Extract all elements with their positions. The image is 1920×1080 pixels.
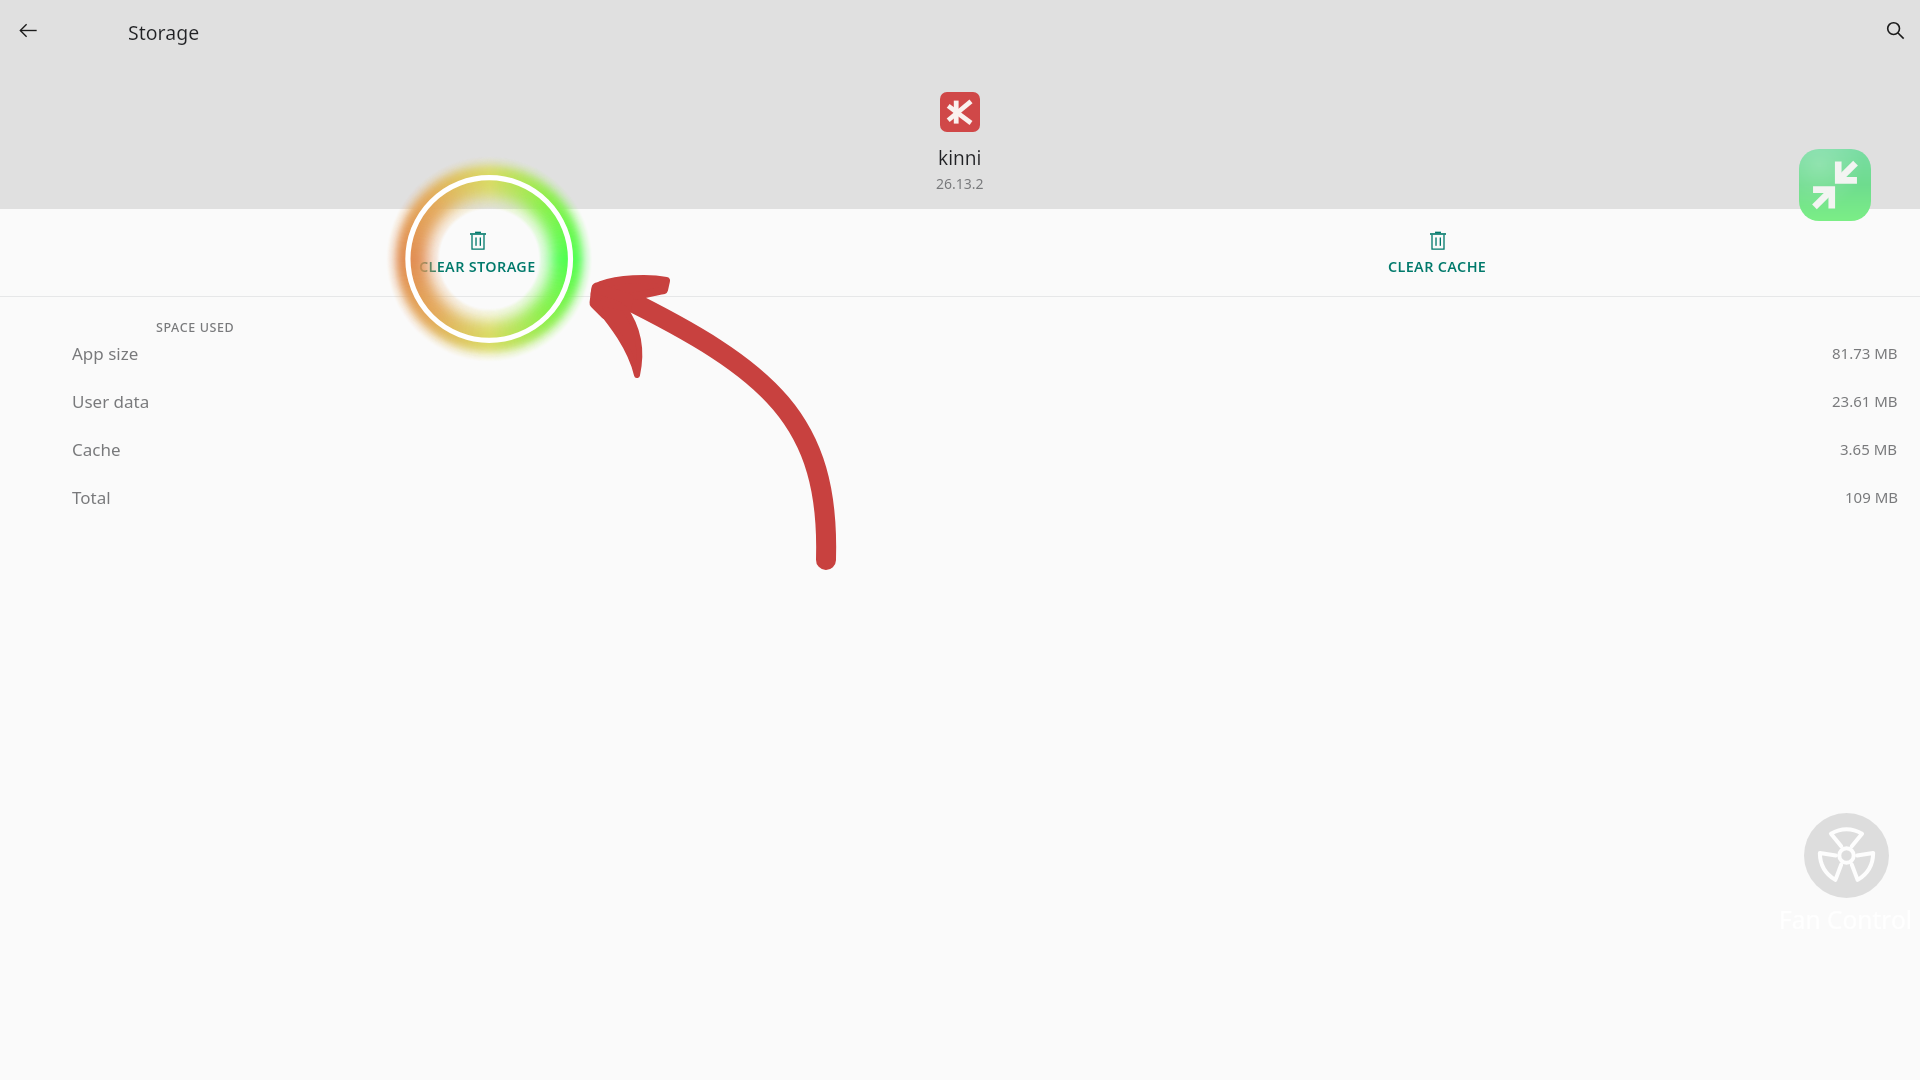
button[interactable]: App size	[0, 329, 1920, 377]
staticText: CLEAR CACHE	[1388, 257, 1487, 277]
staticText: Total	[72, 486, 111, 509]
staticText: Cache	[72, 438, 121, 461]
button[interactable]: Search	[1870, 5, 1920, 55]
staticText: App size	[72, 342, 139, 365]
staticText: CLEAR STORAGE	[419, 257, 536, 277]
button[interactable]: Collapse window	[1799, 149, 1871, 221]
button[interactable]: CLEAR STORAGE	[0, 209, 960, 296]
button[interactable]: Fan Control	[1770, 813, 1920, 936]
staticText: 26.13.2	[936, 174, 984, 193]
staticText: User data	[72, 390, 150, 413]
staticText: 3.65 MB	[1840, 439, 1898, 459]
staticText: Storage	[128, 19, 200, 46]
staticText: kinni	[938, 145, 982, 171]
staticText: SPACE USED	[156, 319, 235, 336]
staticText: 109 MB	[1845, 487, 1898, 507]
staticText: 23.61 MB	[1832, 391, 1898, 411]
button[interactable]: Back	[3, 5, 53, 55]
button[interactable]: CLEAR CACHE	[960, 209, 1920, 296]
button[interactable]: Cache	[0, 425, 1920, 473]
staticText: 81.73 MB	[1832, 343, 1898, 363]
button[interactable]: User data	[0, 377, 1920, 425]
button[interactable]: Total	[0, 473, 1920, 521]
